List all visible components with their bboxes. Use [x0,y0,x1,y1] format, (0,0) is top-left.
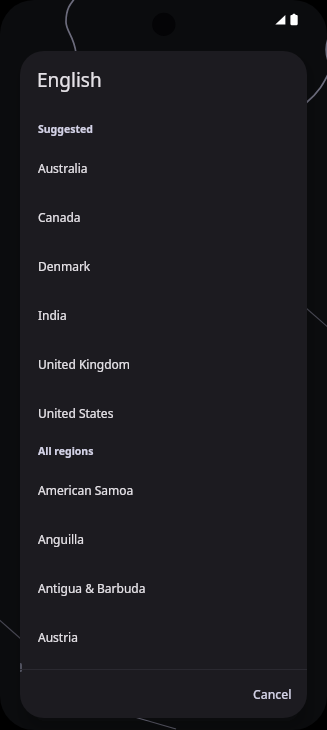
staticText: United Kingdom [38,356,131,372]
button[interactable]: India [20,290,307,339]
staticText: Suggested [38,122,93,136]
button[interactable]: Canada [20,192,307,241]
button[interactable]: United States [20,388,307,437]
staticText: Canada [38,209,81,225]
staticText: Denmark [38,258,91,274]
staticText: American Samoa [38,482,134,498]
staticText: Anguilla [38,531,84,547]
other: Status bar: signal, battery [0,0,327,44]
staticText: Antigua & Barbuda [38,580,146,596]
staticText: Cancel [253,686,292,703]
button[interactable]: Cancel [241,678,304,711]
button[interactable]: United Kingdom [20,339,307,388]
staticText: All regions [38,444,94,458]
button[interactable]: Austria [20,612,307,661]
staticText: English [37,67,102,93]
staticText: United States [38,405,114,421]
button[interactable]: Anguilla [20,514,307,563]
button[interactable]: Australia [20,143,307,192]
staticText: Australia [38,160,88,176]
button[interactable]: Antigua & Barbuda [20,563,307,612]
button[interactable]: American Samoa [20,465,307,514]
staticText: Austria [38,629,78,645]
button[interactable]: Denmark [20,241,307,290]
staticText: India [38,307,67,323]
